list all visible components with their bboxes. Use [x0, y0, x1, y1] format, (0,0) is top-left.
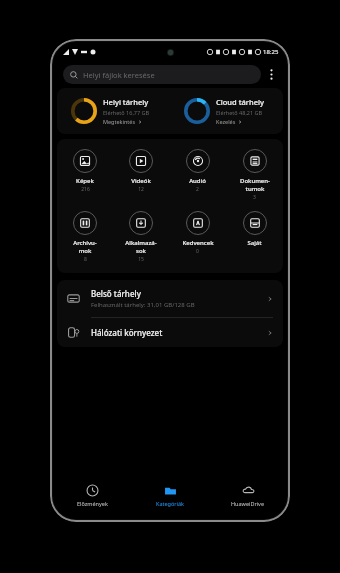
button[interactable]: Hálózati környezet: [57, 318, 283, 347]
staticText: Helyi tárhely: [103, 97, 149, 107]
button[interactable]: Alkalmazá- sok: [113, 211, 169, 263]
staticText: Archívu- mok: [73, 239, 97, 255]
button[interactable]: Cloud tárhely: [170, 97, 283, 125]
button[interactable]: Kategóriák: [131, 478, 209, 512]
button[interactable]: Videók: [113, 149, 169, 193]
staticText: Előzmények: [77, 500, 108, 507]
staticText: Elérhető 16,77 GB: [103, 109, 150, 116]
button[interactable]: Előzmények: [53, 478, 131, 512]
staticText: Kedvencek: [182, 239, 214, 247]
button[interactable]: Képek: [57, 149, 113, 193]
staticText: Cloud tárhely: [216, 97, 264, 107]
staticText: 12: [138, 186, 144, 193]
staticText: 3: [253, 194, 256, 201]
button[interactable]: Audió: [169, 149, 226, 193]
staticText: Alkalmazá- sok: [125, 239, 157, 255]
staticText: Kategóriák: [156, 500, 185, 507]
staticText: 18:25: [263, 48, 279, 56]
staticText: Felhasznált tárhely: 31,01 GB/128 GB: [91, 301, 195, 309]
staticText: Audió: [189, 177, 206, 185]
button[interactable]: More options: [261, 64, 281, 84]
staticText: 8: [84, 256, 87, 263]
button[interactable]: Helyi tárhely: [57, 97, 170, 125]
staticText: HuaweiDrive: [231, 500, 265, 507]
staticText: Belső tárhely: [91, 288, 141, 299]
button[interactable]: Kedvencek: [169, 211, 226, 255]
button[interactable]: Belső tárhely: [57, 280, 283, 317]
staticText: Helyi fájlok keresése: [83, 70, 155, 80]
staticText: Dokumen- tumok: [240, 177, 270, 193]
staticText: Hálózati környezet: [91, 327, 163, 338]
button[interactable]: Archívu- mok: [57, 211, 113, 263]
staticText: Saját: [247, 239, 262, 247]
staticText: Megtekintés: [103, 118, 136, 125]
staticText: 2: [196, 186, 199, 193]
staticText: Elérhető 48,21 GB: [216, 109, 263, 116]
staticText: 216: [81, 186, 90, 193]
staticText: Kezelés: [216, 118, 236, 125]
staticText: 0: [196, 248, 199, 255]
button[interactable]: Dokumen- tumok: [226, 149, 283, 201]
staticText: Képek: [76, 177, 94, 185]
staticText: Videók: [131, 177, 151, 185]
button[interactable]: Saját: [226, 211, 283, 247]
button[interactable]: Helyi fájlok keresése: [63, 65, 261, 84]
staticText: 15: [138, 256, 144, 263]
button[interactable]: HuaweiDrive: [209, 478, 287, 512]
